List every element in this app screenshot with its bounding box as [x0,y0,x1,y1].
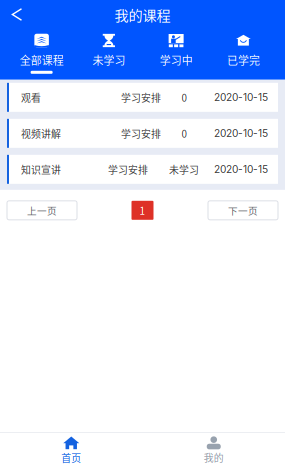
staticText: 学习安排 [121,90,161,104]
staticText: 观看 [21,90,41,104]
staticText: 2020-10-15 [214,91,268,103]
staticText: 2020-10-15 [214,127,268,139]
staticText: 知识宣讲 [21,162,61,176]
staticText: 2020-10-15 [214,163,268,175]
button[interactable]: 首页 [0,429,142,471]
staticText: 未学习 [92,52,125,68]
button[interactable]: 上一页 [7,201,77,220]
staticText: 0 [181,126,186,140]
button[interactable]: 未学习 [75,29,142,80]
staticText: 已学完 [227,52,260,68]
button[interactable]: 下一页 [208,201,278,220]
staticText: 全部课程 [20,52,64,68]
staticText: 我的 [204,450,224,465]
button[interactable]: 1 [131,201,153,220]
staticText: 0 [181,90,186,104]
staticText: 下一页 [228,203,258,217]
button[interactable]: 观看 [7,83,278,112]
staticText: 未学习 [169,162,199,176]
button[interactable]: 已学完 [210,29,277,80]
button[interactable]: Back [0,1,34,28]
staticText: 上一页 [27,203,57,217]
button[interactable]: 视频讲解 [7,119,278,148]
staticText: 学习中 [160,52,193,68]
staticText: 我的课程 [114,4,170,25]
staticText: 视频讲解 [21,126,61,140]
button[interactable]: 我的 [142,429,285,471]
staticText: 学习安排 [108,162,148,176]
staticText: 1 [139,203,145,218]
button[interactable]: 学习中 [142,29,210,80]
button[interactable]: 知识宣讲 [7,155,278,184]
button[interactable]: 全部课程 [8,29,75,80]
staticText: 首页 [61,451,81,465]
staticText: 学习安排 [121,126,161,140]
